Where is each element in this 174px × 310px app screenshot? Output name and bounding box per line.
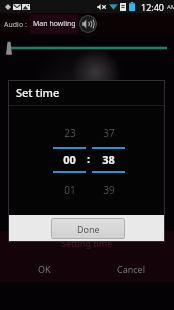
staticText: 37 [103, 126, 115, 140]
staticText: : [87, 151, 91, 166]
staticText: 23 [64, 126, 76, 140]
staticText: Man howling [33, 19, 76, 29]
staticText: 12:40 [141, 1, 165, 13]
staticText: AM [167, 3, 174, 11]
button[interactable]: Cancel [97, 259, 165, 278]
staticText: Done [77, 223, 100, 235]
staticText: OK [38, 263, 51, 275]
staticText: 38 [102, 152, 115, 167]
staticText: 01 [64, 183, 76, 197]
button[interactable]: OK [10, 259, 78, 278]
staticText: Set time [16, 85, 60, 100]
staticText: Cancel [117, 263, 146, 275]
staticText: Setting time [61, 237, 113, 249]
staticText: 39 [103, 183, 115, 197]
button[interactable]: Man howling [30, 14, 78, 34]
button[interactable]: Play sound [79, 15, 97, 33]
staticText: 00 [63, 152, 76, 167]
staticText: Audio : [4, 20, 27, 30]
button[interactable]: Done [51, 218, 125, 239]
